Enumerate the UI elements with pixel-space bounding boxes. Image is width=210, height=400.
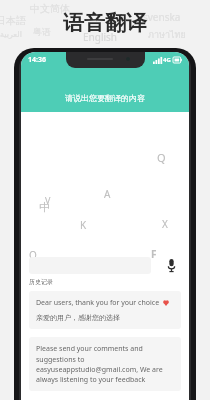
- staticText: 语音翻译: [63, 10, 147, 36]
- staticText: Q: [29, 248, 37, 262]
- button[interactable]: Voice input: [161, 255, 181, 275]
- staticText: Dear users, thank you for your choice: [36, 298, 160, 308]
- staticText: العربية: [0, 30, 22, 39]
- staticText: Please send your comments and suggestion…: [36, 344, 174, 384]
- staticText: 亲爱的用户，感谢您的选择: [36, 313, 120, 322]
- staticText: Q: [157, 150, 166, 165]
- staticText: English: [83, 30, 118, 44]
- staticText: 4G: [163, 56, 171, 64]
- staticText: A: [104, 187, 111, 201]
- button[interactable]: Please send your comments and suggestion…: [29, 337, 181, 391]
- staticText: X: [162, 217, 168, 231]
- button[interactable]: Dear users, thank you for your choice: [29, 291, 181, 329]
- staticText: 请说出您要翻译的内容: [65, 93, 145, 103]
- staticText: V: [45, 194, 51, 206]
- staticText: K: [80, 218, 87, 232]
- staticText: 14:36: [28, 55, 46, 65]
- staticText: svenska: [143, 10, 181, 24]
- staticText: 粤语: [33, 26, 51, 37]
- staticText: 中文简体: [30, 2, 70, 15]
- staticText: ภาษาไทย: [148, 28, 186, 42]
- staticText: 历史记录: [29, 278, 53, 286]
- staticText: 中: [39, 200, 50, 214]
- staticText: 日本語: [0, 14, 26, 27]
- staticText: F: [151, 247, 157, 261]
